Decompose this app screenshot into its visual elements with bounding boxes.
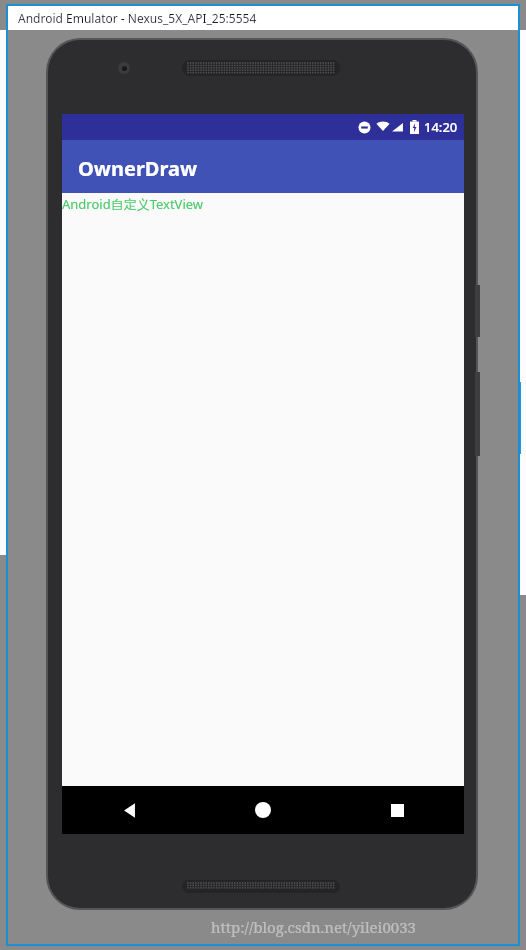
button[interactable]: OwnerDraw	[62, 140, 464, 193]
staticText: OwnerDraw	[78, 155, 198, 182]
staticText: Android自定义TextView	[62, 195, 204, 213]
button[interactable]: Home	[196, 786, 330, 834]
staticText: http://blog.csdn.net/yilei0033	[211, 917, 416, 937]
staticText: Android Emulator - Nexus_5X_API_25:5554	[18, 10, 257, 26]
staticText: 14:20	[424, 118, 458, 136]
button[interactable]: Recent apps	[330, 786, 464, 834]
button[interactable]: Back	[62, 786, 196, 834]
